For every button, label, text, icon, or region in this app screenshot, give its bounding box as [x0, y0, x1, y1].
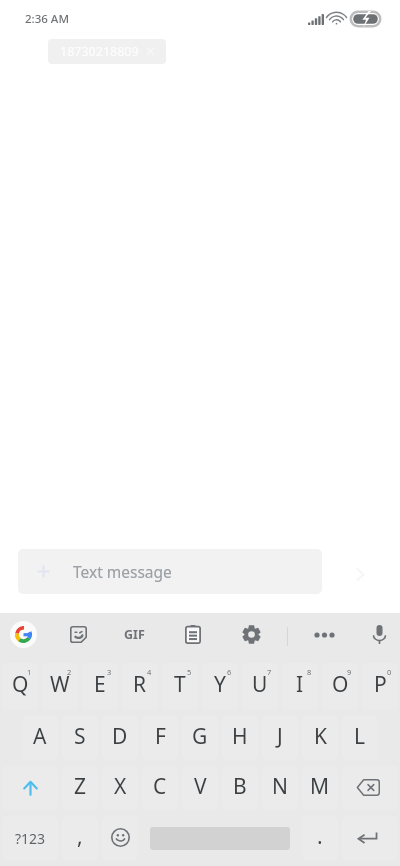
staticText: O	[332, 670, 349, 699]
staticText: Text message	[73, 561, 172, 582]
staticText: Y	[214, 670, 226, 699]
button[interactable]: Shift	[2, 766, 58, 810]
button[interactable]: L	[342, 716, 378, 760]
button[interactable]: P	[362, 663, 398, 710]
button[interactable]: V	[182, 766, 218, 810]
button[interactable]: E	[82, 663, 118, 710]
staticText: M	[310, 772, 330, 801]
staticText: K	[314, 722, 327, 751]
button[interactable]: Space	[150, 816, 290, 860]
staticText: E	[94, 670, 106, 699]
button[interactable]: Text message	[18, 549, 322, 594]
button[interactable]: More options	[302, 613, 346, 660]
button[interactable]: J	[262, 716, 298, 760]
button[interactable]: R	[122, 663, 158, 710]
button[interactable]: M	[302, 766, 338, 810]
staticText: I	[296, 670, 304, 699]
button[interactable]: Clipboard	[171, 613, 215, 660]
button[interactable]: Z	[62, 766, 98, 810]
button[interactable]: Stickers	[56, 613, 100, 660]
button[interactable]: H	[222, 716, 258, 760]
staticText: V	[194, 772, 207, 801]
staticText: B	[233, 772, 247, 801]
staticText: D	[112, 722, 128, 751]
staticText: Q	[12, 670, 29, 699]
staticText: Z	[74, 772, 87, 801]
button[interactable]: T	[162, 663, 198, 710]
button[interactable]: F	[142, 716, 178, 760]
button[interactable]: Enter	[342, 816, 398, 860]
staticText: ,	[77, 822, 83, 851]
button[interactable]: G	[182, 716, 218, 760]
staticText: ?123	[15, 829, 46, 848]
button[interactable]: Q	[2, 663, 38, 710]
button[interactable]: 18730218809	[48, 39, 166, 64]
button[interactable]: Emoji	[102, 816, 138, 860]
button[interactable]: X	[102, 766, 138, 810]
staticText: J	[277, 722, 283, 751]
staticText: 4	[147, 667, 152, 677]
button[interactable]: K	[302, 716, 338, 760]
staticText: F	[155, 722, 166, 751]
button[interactable]: ?123	[2, 816, 58, 860]
staticText: 3	[107, 667, 112, 677]
staticText: 8	[307, 667, 312, 677]
button[interactable]: W	[42, 663, 78, 710]
button[interactable]: A	[22, 716, 58, 760]
staticText: .	[317, 822, 323, 851]
button[interactable]: U	[242, 663, 278, 710]
staticText: 0	[387, 667, 392, 677]
staticText: S	[74, 722, 86, 751]
button[interactable]: N	[262, 766, 298, 810]
staticText: 18730218809	[60, 43, 139, 60]
staticText: W	[50, 670, 70, 699]
staticText: X	[114, 772, 127, 801]
staticText: P	[374, 670, 387, 699]
staticText: L	[354, 722, 366, 751]
button[interactable]: C	[142, 766, 178, 810]
staticText: R	[133, 670, 147, 699]
button[interactable]: Google search	[1, 613, 45, 660]
button[interactable]: ,	[62, 816, 98, 860]
staticText: C	[153, 772, 167, 801]
staticText: H	[232, 722, 248, 751]
button[interactable]: Voice input	[357, 613, 400, 660]
staticText: 7	[267, 667, 272, 677]
staticText: G	[192, 722, 208, 751]
staticText: 9	[347, 667, 352, 677]
button[interactable]: Settings	[229, 613, 273, 660]
staticText: N	[272, 772, 288, 801]
staticText: 2	[67, 667, 72, 677]
staticText: U	[252, 670, 268, 699]
button[interactable]: I	[282, 663, 318, 710]
button[interactable]: .	[302, 816, 338, 860]
button[interactable]: Backspace	[342, 766, 398, 810]
button[interactable]: GIF	[112, 613, 156, 660]
button[interactable]: Y	[202, 663, 238, 710]
staticText: GIF	[124, 626, 145, 643]
staticText: 1	[27, 667, 32, 677]
staticText: 6	[227, 667, 232, 677]
staticText: 5	[187, 667, 192, 677]
button[interactable]: O	[322, 663, 358, 710]
button[interactable]: D	[102, 716, 138, 760]
staticText: A	[33, 722, 47, 751]
staticText: T	[174, 670, 186, 699]
staticText: 2:36 AM	[25, 11, 69, 27]
button[interactable]: B	[222, 766, 258, 810]
button[interactable]: S	[62, 716, 98, 760]
